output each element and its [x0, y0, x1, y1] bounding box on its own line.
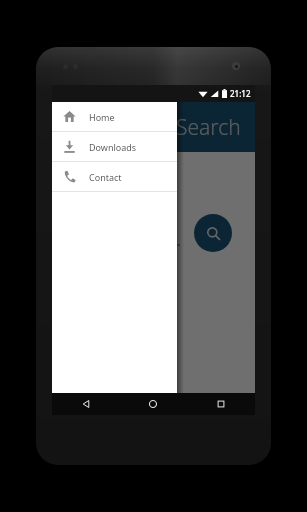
staticText: Home [89, 111, 115, 123]
button[interactable]: Home [119, 393, 187, 415]
button[interactable]: Search [194, 214, 232, 252]
button[interactable]: Home [52, 102, 177, 131]
button[interactable]: Downloads [52, 132, 177, 161]
button[interactable]: Contact [52, 162, 177, 191]
staticText: 21:12 [230, 88, 251, 99]
staticText: Downloads [89, 141, 137, 153]
button[interactable]: Recent apps [187, 393, 255, 415]
button[interactable]: Back [52, 393, 119, 415]
staticText: Search [176, 113, 241, 142]
staticText: Contact [89, 171, 122, 183]
